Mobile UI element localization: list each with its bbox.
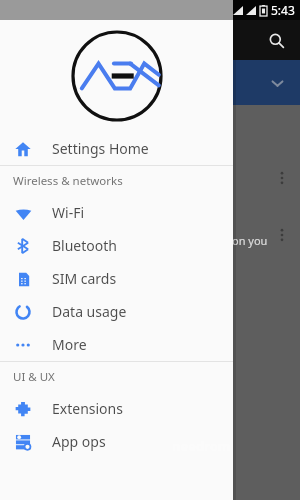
button[interactable]: More options [272, 225, 292, 245]
staticText: 5:43 [271, 2, 295, 18]
staticText: Extensions [52, 399, 123, 418]
button[interactable]: Extensions [0, 392, 233, 425]
staticText: App ops [52, 432, 106, 451]
staticText: UI & UX [13, 369, 55, 385]
staticText: Wi-Fi [52, 203, 85, 222]
staticText: Data usage [52, 302, 127, 321]
staticText: More [52, 335, 87, 354]
button[interactable]: Expand [260, 66, 294, 100]
button[interactable]: Wi-Fi [0, 196, 233, 229]
button[interactable]: More [0, 328, 233, 361]
staticText: Wireless & networks [13, 173, 123, 189]
staticText: on you [232, 233, 268, 248]
button[interactable]: App ops [0, 425, 233, 458]
staticText: SIM cards [52, 269, 117, 288]
button[interactable]: Search [258, 22, 294, 58]
button[interactable]: More options [272, 168, 292, 188]
staticText: Settings Home [52, 139, 149, 158]
staticText: Bluetooth [52, 236, 117, 255]
button[interactable]: Data usage [0, 295, 233, 328]
button[interactable]: Bluetooth [0, 229, 233, 262]
button[interactable]: SIM cards [0, 262, 233, 295]
button[interactable]: Settings Home [0, 132, 233, 165]
